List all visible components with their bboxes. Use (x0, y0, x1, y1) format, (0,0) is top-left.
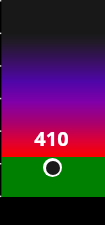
staticText: 410 (34, 125, 69, 152)
button[interactable]: Record (43, 158, 62, 177)
